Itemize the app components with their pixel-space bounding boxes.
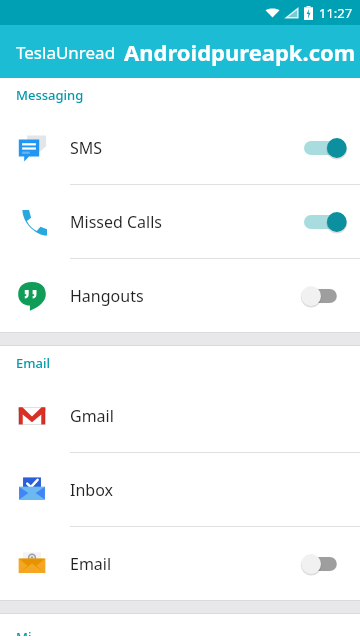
button[interactable]: Hangouts <box>0 259 360 332</box>
button[interactable]: SMS <box>0 111 360 184</box>
staticText: Androidpureapk.com <box>124 37 356 67</box>
button[interactable]: Email <box>0 527 360 600</box>
staticText: Mi <box>16 628 32 636</box>
staticText: Inbox <box>70 479 344 501</box>
staticText: Email <box>70 553 304 575</box>
button[interactable]: Missed Calls <box>0 185 360 258</box>
button[interactable]: Toggle off <box>304 283 344 309</box>
staticText: 11:27 <box>319 4 353 22</box>
staticText: Missed Calls <box>70 211 304 233</box>
staticText: Gmail <box>70 405 344 427</box>
staticText: SMS <box>70 137 304 159</box>
staticText: Hangouts <box>70 285 304 307</box>
staticText: Email <box>16 354 51 372</box>
button[interactable]: Toggle off <box>304 551 344 577</box>
button[interactable]: Gmail <box>0 379 360 452</box>
staticText: Messaging <box>16 86 84 104</box>
button[interactable]: Inbox <box>0 453 360 526</box>
button[interactable]: Toggle on <box>304 135 344 161</box>
button[interactable]: Toggle on <box>304 209 344 235</box>
staticText: TeslaUnread <box>16 41 116 64</box>
